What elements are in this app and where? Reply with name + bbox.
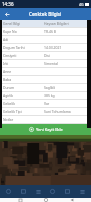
button[interactable]: Yeni Kayit Ekle bbox=[0, 124, 91, 135]
staticText: Yeni Kayit Ekle bbox=[36, 127, 63, 132]
staticText: TR-46 B bbox=[44, 29, 57, 34]
staticText: Disi bbox=[44, 53, 50, 58]
button[interactable]: Notlar bbox=[0, 116, 91, 123]
staticText: Kupe No bbox=[3, 29, 44, 34]
button[interactable]: Anne bbox=[0, 68, 91, 75]
button[interactable]: Agirlik bbox=[0, 92, 91, 99]
button[interactable]: Durum bbox=[0, 84, 91, 91]
staticText: Dogum Tarihi bbox=[3, 45, 44, 50]
staticText: Genel Bilgi bbox=[3, 21, 44, 26]
button[interactable]: Recents bbox=[15, 198, 26, 202]
staticText: Durum bbox=[3, 85, 44, 90]
button[interactable]: List bbox=[17, 185, 30, 198]
button[interactable]: Back bbox=[2, 9, 13, 20]
staticText: Notlar bbox=[3, 117, 44, 122]
staticText: Simental bbox=[44, 61, 58, 66]
button[interactable]: Adi bbox=[0, 36, 91, 43]
staticText: Anne bbox=[3, 69, 44, 74]
staticText: 4G bbox=[79, 2, 84, 7]
button[interactable]: Add bbox=[32, 185, 45, 198]
staticText: 14:36 bbox=[2, 1, 14, 7]
button[interactable]: Irki bbox=[0, 60, 91, 67]
button[interactable]: Kupe No bbox=[0, 28, 91, 35]
button[interactable]: Profile bbox=[76, 185, 89, 198]
button[interactable]: Reports bbox=[61, 185, 74, 198]
staticText: 385 kg bbox=[44, 93, 55, 98]
staticText: Suni Tohumlama bbox=[44, 109, 71, 114]
staticText: Saglikli bbox=[44, 85, 56, 90]
button[interactable]: Gebelik Tipi bbox=[0, 108, 91, 115]
button[interactable]: Baba bbox=[0, 76, 91, 83]
staticText: Gebelik bbox=[3, 101, 44, 106]
staticText: Irki bbox=[3, 61, 44, 66]
button[interactable]: Gebelik bbox=[0, 100, 91, 107]
button[interactable]: Cinsiyeti bbox=[0, 52, 91, 59]
staticText: Hayvan Bilgileri bbox=[44, 21, 69, 26]
staticText: Cenktek Bilgisi bbox=[29, 11, 62, 17]
staticText: 14.03.2021 bbox=[44, 45, 62, 50]
staticText: Gebelik Tipi bbox=[3, 109, 44, 114]
button[interactable]: Home bbox=[2, 185, 15, 198]
staticText: Var bbox=[44, 101, 50, 106]
button[interactable]: Search bbox=[46, 185, 59, 198]
staticText: Baba bbox=[3, 77, 44, 82]
staticText: Adi bbox=[3, 37, 44, 42]
button[interactable]: Dogum Tarihi bbox=[0, 44, 91, 51]
staticText: Agirlik bbox=[3, 93, 44, 98]
button[interactable]: Home bbox=[40, 198, 51, 202]
staticText: Cinsiyeti bbox=[3, 53, 44, 58]
button[interactable]: Back bbox=[66, 198, 77, 202]
